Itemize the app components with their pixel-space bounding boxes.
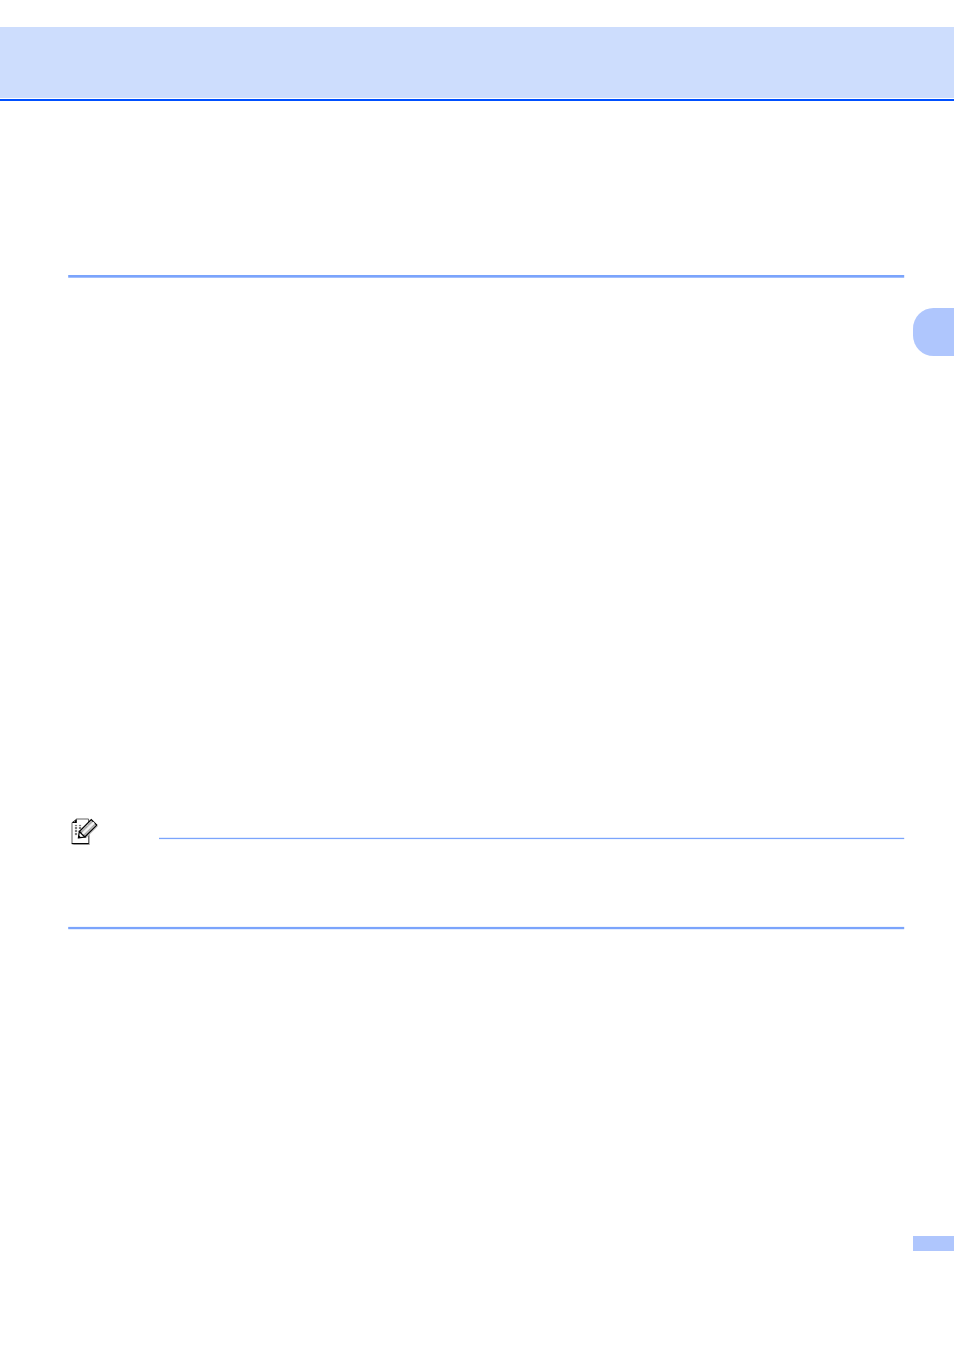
button[interactable]: Note (66, 812, 104, 850)
button[interactable]: Chapter tab (913, 308, 954, 356)
